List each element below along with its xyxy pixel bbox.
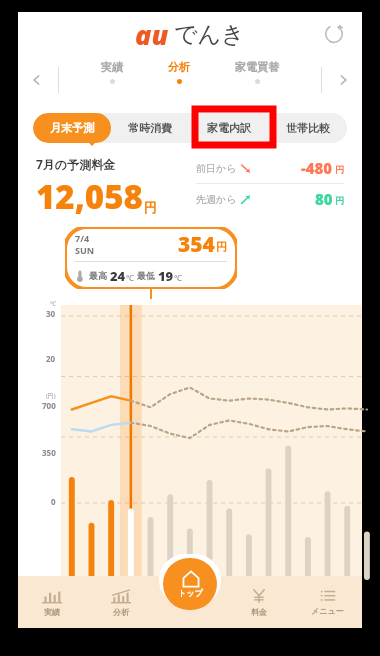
staticText: 円 <box>216 240 227 254</box>
staticText: 世帯比較 <box>286 121 330 135</box>
staticText: 700 <box>42 400 56 411</box>
button[interactable]: 分析 <box>86 576 155 628</box>
button[interactable]: 家電買替 <box>227 56 287 88</box>
staticText: 料金 <box>251 607 267 617</box>
staticText: 30 <box>46 308 56 319</box>
staticText: 354 <box>178 230 215 259</box>
staticText: 円 <box>144 199 157 215</box>
button[interactable]: Next <box>328 65 358 95</box>
button[interactable]: 常時消費 <box>111 113 189 143</box>
staticText: SUN <box>118 594 131 602</box>
staticText: 19 <box>158 267 174 285</box>
staticText: 20 <box>46 353 56 364</box>
button[interactable]: メニュー <box>293 576 362 628</box>
staticText: 前日から <box>196 162 237 175</box>
staticText: 12,058 <box>36 174 143 219</box>
button[interactable]: トップ <box>163 558 217 610</box>
staticText: (円) <box>46 392 56 400</box>
staticText: 4 <box>122 582 128 594</box>
button[interactable]: 月末予測 <box>33 113 111 143</box>
staticText: 24 <box>110 267 126 285</box>
staticText: 月末予測 <box>50 121 94 135</box>
staticText: 実績 <box>44 607 60 617</box>
staticText: 7/4 <box>75 232 90 244</box>
button[interactable]: 料金 <box>224 576 293 628</box>
staticText: メニュー <box>311 606 344 616</box>
staticText: au <box>135 16 169 53</box>
staticText: 0 <box>51 496 56 507</box>
staticText: 家電買替 <box>235 60 279 74</box>
staticText: 円 <box>335 195 344 206</box>
staticText: 先週から <box>196 193 237 206</box>
staticText: 15 <box>328 582 339 594</box>
staticText: ℃ <box>174 272 182 283</box>
staticText: 分析 <box>168 60 190 74</box>
staticText: 家電内訳 <box>207 121 251 135</box>
staticText: ℃ <box>50 300 56 308</box>
staticText: 6 <box>160 582 166 594</box>
button[interactable]: 実績 <box>93 56 131 88</box>
button[interactable]: Previous <box>22 65 52 95</box>
button[interactable]: 実績 <box>18 576 86 628</box>
button[interactable]: 家電内訳 <box>189 113 268 143</box>
staticText: 常時消費 <box>128 121 172 135</box>
staticText: ℃ <box>126 272 134 283</box>
staticText: トップ <box>178 588 203 598</box>
staticText: 最低 <box>137 270 155 281</box>
staticText: 8 <box>198 582 204 594</box>
button[interactable]: Refresh <box>318 18 350 50</box>
staticText: 分析 <box>113 607 129 617</box>
staticText: SUN <box>75 244 95 256</box>
staticText: 9 <box>217 582 223 594</box>
button[interactable]: 分析 <box>160 56 198 88</box>
staticText: 7月の予測料金 <box>36 156 116 172</box>
staticText: 350 <box>42 447 56 458</box>
button[interactable]: 世帯比較 <box>268 113 347 143</box>
staticText: 円 <box>335 164 344 175</box>
staticText: 80 <box>315 189 333 209</box>
staticText: でんき <box>174 20 245 49</box>
staticText: -480 <box>301 158 333 178</box>
staticText: 最高 <box>89 270 107 281</box>
staticText: 実績 <box>101 60 123 74</box>
staticText: 7 <box>179 582 185 594</box>
staticText: 11 <box>252 582 263 594</box>
